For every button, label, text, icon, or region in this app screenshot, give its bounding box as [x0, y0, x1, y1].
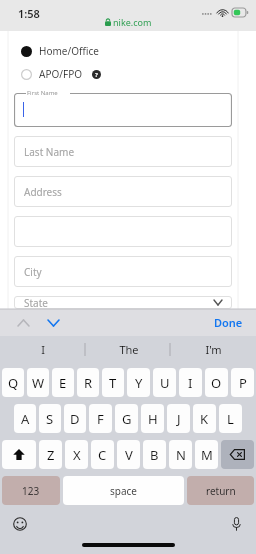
button[interactable]: State: [14, 296, 232, 309]
staticText: Y: [135, 374, 143, 392]
staticText: J: [177, 410, 181, 428]
button[interactable]: Z: [39, 440, 62, 469]
staticText: ?: [95, 71, 98, 79]
button[interactable]: G: [115, 404, 138, 433]
button[interactable]: O: [205, 368, 228, 397]
button[interactable]: L: [219, 404, 242, 433]
button[interactable]: R: [77, 368, 99, 397]
staticText: G: [122, 410, 132, 428]
staticText: V: [125, 446, 133, 464]
staticText: City: [24, 265, 42, 279]
staticText: nike.com: [113, 16, 152, 28]
button[interactable]: Y: [127, 368, 150, 397]
button[interactable]: H: [141, 404, 164, 433]
button[interactable]: return: [187, 476, 254, 505]
staticText: I'm: [205, 342, 222, 357]
staticText: A: [21, 410, 30, 428]
button[interactable]: 123: [2, 476, 60, 505]
staticText: N: [176, 446, 186, 464]
staticText: O: [211, 374, 222, 392]
button[interactable]: Shift: [2, 440, 36, 469]
button[interactable]: Previous field: [12, 312, 34, 334]
button[interactable]: Dictation: [226, 514, 246, 534]
staticText: P: [239, 374, 247, 392]
staticText: L: [227, 410, 234, 428]
button[interactable]: I'm: [171, 336, 256, 363]
button[interactable]: T: [102, 368, 124, 397]
staticText: Q: [8, 374, 19, 392]
staticText: First Name: [27, 89, 58, 97]
staticText: 1:58: [18, 6, 40, 21]
button[interactable]: space: [63, 476, 184, 505]
staticText: R: [84, 374, 93, 392]
button[interactable]: W: [27, 368, 49, 397]
staticText: return: [206, 484, 236, 498]
staticText: Home/Office: [39, 44, 99, 58]
button[interactable]: M: [195, 440, 218, 469]
button[interactable]: The: [86, 336, 171, 363]
button[interactable]: E: [52, 368, 74, 397]
button[interactable]: Next field: [42, 312, 64, 334]
staticText: U: [160, 374, 170, 392]
button[interactable]: Last Name: [14, 136, 232, 167]
button[interactable]: I: [179, 368, 202, 397]
staticText: APO/FPO: [39, 67, 83, 81]
staticText: Done: [214, 315, 243, 330]
staticText: Z: [47, 446, 55, 464]
button[interactable]: Emoji keyboard: [10, 514, 30, 534]
staticText: Last Name: [24, 145, 75, 159]
button[interactable]: Address: [14, 176, 232, 207]
staticText: B: [150, 446, 159, 464]
button[interactable]: F: [89, 404, 112, 433]
button[interactable]: D: [64, 404, 86, 433]
button[interactable]: S: [39, 404, 61, 433]
button[interactable]: U: [153, 368, 176, 397]
staticText: H: [148, 410, 158, 428]
staticText: X: [73, 446, 81, 464]
button[interactable]: X: [65, 440, 88, 469]
staticText: 123: [22, 484, 40, 498]
button[interactable]: [14, 216, 232, 247]
button[interactable]: APO/FPO: [14, 65, 232, 83]
staticText: I: [41, 342, 45, 357]
button[interactable]: I: [0, 336, 86, 363]
staticText: T: [109, 374, 117, 392]
staticText: space: [110, 484, 137, 498]
staticText: C: [98, 446, 107, 464]
button[interactable]: City: [14, 256, 232, 287]
button[interactable]: Q: [2, 368, 24, 397]
staticText: E: [59, 374, 67, 392]
staticText: F: [97, 410, 104, 428]
staticText: I: [188, 374, 193, 392]
staticText: M: [201, 446, 213, 464]
button[interactable]: B: [143, 440, 166, 469]
staticText: K: [200, 410, 209, 428]
button[interactable]: K: [193, 404, 216, 433]
button[interactable]: C: [91, 440, 114, 469]
button[interactable]: P: [231, 368, 254, 397]
staticText: W: [32, 374, 45, 392]
button[interactable]: J: [167, 404, 190, 433]
staticText: S: [46, 410, 54, 428]
button[interactable]: N: [169, 440, 192, 469]
button[interactable]: Home/Office: [14, 42, 232, 60]
staticText: The: [119, 342, 139, 357]
button[interactable]: A: [14, 404, 36, 433]
button[interactable]: Help about APO/FPO: [92, 70, 101, 79]
button[interactable]: Backspace: [221, 440, 254, 469]
button[interactable]: Done: [201, 311, 256, 334]
staticText: D: [70, 410, 80, 428]
staticText: State: [24, 296, 48, 309]
button[interactable]: V: [117, 440, 140, 469]
staticText: Address: [24, 185, 62, 199]
